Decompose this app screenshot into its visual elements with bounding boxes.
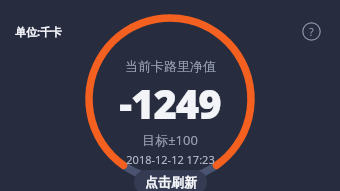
staticText: 目标±100 <box>142 131 198 149</box>
button[interactable]: 点击刷新 <box>134 170 207 191</box>
staticText: 2018-12-12 17:23 <box>126 152 215 167</box>
staticText: 点击刷新 <box>145 174 197 190</box>
staticText: 当前卡路里净值 <box>125 58 216 74</box>
button[interactable]: Help <box>300 20 322 42</box>
staticText: ? <box>309 24 314 39</box>
staticText: 单位:千卡 <box>15 24 63 39</box>
staticText: -1249 <box>119 76 221 130</box>
